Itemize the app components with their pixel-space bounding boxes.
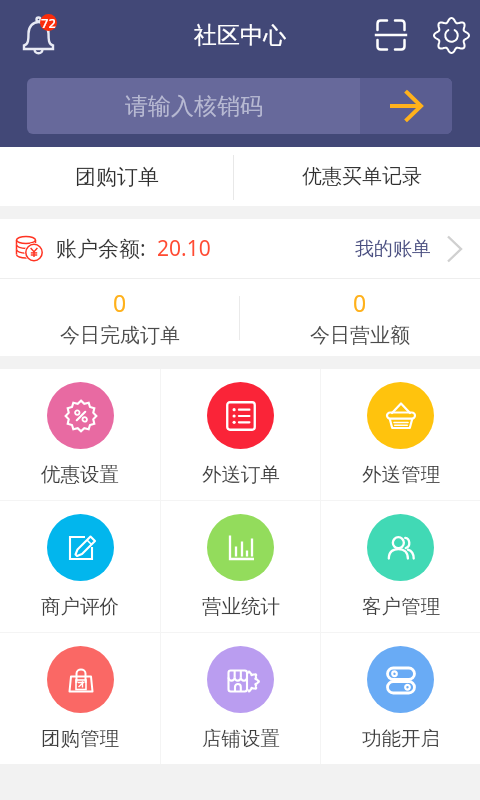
- staticText: 店铺设置: [202, 726, 280, 751]
- button[interactable]: 0: [0, 279, 239, 356]
- staticText: 团购管理: [41, 726, 119, 751]
- button[interactable]: 功能开启: [321, 633, 480, 764]
- button[interactable]: 客户管理: [321, 501, 480, 632]
- staticText: 团购订单: [75, 164, 159, 190]
- button[interactable]: 优惠设置: [0, 369, 160, 500]
- button[interactable]: 团购订单: [0, 147, 234, 206]
- staticText: 0: [113, 287, 127, 318]
- staticText: 优惠买单记录: [302, 164, 422, 189]
- staticText: 社区中心: [194, 21, 286, 50]
- button[interactable]: Notifications: [0, 0, 78, 70]
- staticText: 优惠设置: [41, 462, 119, 487]
- staticText: 外送订单: [202, 462, 280, 487]
- staticText: 20.10: [157, 234, 211, 263]
- staticText: 客户管理: [362, 594, 440, 619]
- button[interactable]: 0: [240, 279, 480, 356]
- button[interactable]: 优惠买单记录: [234, 147, 480, 206]
- button[interactable]: Scan: [360, 0, 422, 70]
- staticText: 今日完成订单: [60, 323, 180, 348]
- staticText: 营业统计: [202, 594, 280, 619]
- staticText: 今日营业额: [310, 323, 410, 348]
- staticText: 请输入核销码: [125, 92, 263, 121]
- staticText: 外送管理: [362, 462, 440, 487]
- button[interactable]: 营业统计: [161, 501, 320, 632]
- staticText: 72: [41, 14, 56, 31]
- button[interactable]: 团购管理: [0, 633, 160, 764]
- button[interactable]: 外送订单: [161, 369, 320, 500]
- staticText: 功能开启: [362, 726, 440, 751]
- staticText: 0: [353, 287, 367, 318]
- staticText: 商户评价: [41, 594, 119, 619]
- button[interactable]: 商户评价: [0, 501, 160, 632]
- button[interactable]: 账户余额:: [0, 219, 480, 278]
- staticText: 账户余额:: [56, 234, 146, 263]
- button[interactable]: Submit: [360, 78, 452, 134]
- staticText: 我的账单: [355, 237, 431, 261]
- button[interactable]: Settings: [422, 0, 480, 70]
- button[interactable]: 店铺设置: [161, 633, 320, 764]
- button[interactable]: 外送管理: [321, 369, 480, 500]
